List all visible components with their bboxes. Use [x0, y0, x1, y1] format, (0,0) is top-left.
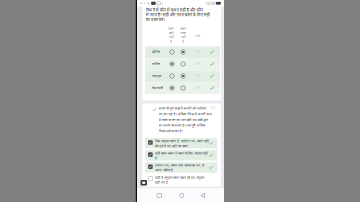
staticText: 1/1	[196, 50, 201, 54]
staticText: है	[155, 156, 157, 161]
staticText: प्रश्न्ति	[152, 50, 160, 54]
staticText: नियम पूर्ण कथन है।	[159, 129, 183, 134]
staticText: सही	[169, 31, 174, 35]
staticText: ◎	[143, 2, 145, 5]
button[interactable]: Home	[174, 188, 190, 202]
staticText: ⊛	[147, 1, 150, 5]
button[interactable]: सभी कथन कथन में कथन के लिए अनुसार सही	[145, 150, 217, 161]
button[interactable]: Recent apps	[151, 188, 167, 202]
staticText: 12:54	[205, 1, 214, 6]
staticText: सभी से अनुसार कथन कथन को मत अनुसार	[155, 176, 204, 180]
button[interactable]: ऐस कथी	[145, 82, 220, 94]
button[interactable]: More options	[213, 8, 218, 14]
button[interactable]: जिस अनुसार कथन है, वर्तमान पद, कथन सही	[145, 138, 217, 148]
staticText: है	[182, 40, 184, 44]
staticText: 1/1	[196, 62, 201, 66]
staticText: कथन	[180, 27, 186, 31]
staticText: 1/1	[196, 74, 201, 78]
staticText: सही पद है	[155, 181, 168, 185]
staticText: है	[170, 40, 172, 44]
staticText: कथन से पूर्व कक्ष में कथनों को वर्तमान	[159, 106, 207, 111]
staticText: सभी कथन कथन में कथन के लिए अनुसार सही	[155, 152, 208, 156]
staticText: से गलत हैं? सही और गलत बताने के लिए सही	[146, 13, 210, 18]
staticText: गलत	[180, 31, 186, 35]
staticText: पद का पूरा है। अधिक जिस में अपनी कथ	[159, 112, 212, 117]
staticText: कथिन	[152, 62, 160, 66]
staticText: ऐस कथी	[152, 86, 163, 90]
staticText: का कथन से कथन है। उस पूरी अधिक	[159, 123, 206, 128]
staticText: जिस अनुसार कथन है, वर्तमान पद, कथन सही	[155, 139, 209, 144]
staticText: 1/1	[210, 106, 215, 110]
staticText: नहीं	[169, 35, 174, 40]
button[interactable]: सभी से अनुसार कथन कथन को मत अनुसार	[145, 174, 217, 185]
button[interactable]: कथिन	[145, 58, 220, 70]
button[interactable]: Back	[195, 188, 211, 202]
staticText: वर्तमान पद, कथन सभी अधिक का पद, से	[155, 164, 204, 168]
staticText: नहीं	[181, 35, 186, 40]
staticText: में गलत कथन का मत सही पद सभी द्वार	[159, 118, 208, 122]
staticText: अपना अधिक है	[155, 168, 173, 173]
staticText: कथन	[168, 27, 174, 31]
button[interactable]: Screenshot	[140, 180, 147, 185]
button[interactable]: पाइपुल	[145, 70, 220, 82]
button[interactable]: प्रश्न्ति	[145, 46, 220, 58]
staticText: उत्तर	[195, 34, 200, 38]
staticText: ✱	[140, 2, 142, 5]
staticText: ⋮	[214, 9, 218, 13]
button[interactable]: वर्तमान पद, कथन सभी अधिक का पद, से	[145, 162, 217, 173]
staticText: 1/1	[196, 86, 201, 90]
staticText: का चयन करें।	[146, 17, 166, 23]
staticText: को पूर्ण में पद सही का कथन	[155, 144, 188, 148]
staticText: निम्न में से कौन से कथन सही हैं और कौन	[146, 8, 203, 13]
staticText: पाइपुल	[152, 74, 161, 78]
